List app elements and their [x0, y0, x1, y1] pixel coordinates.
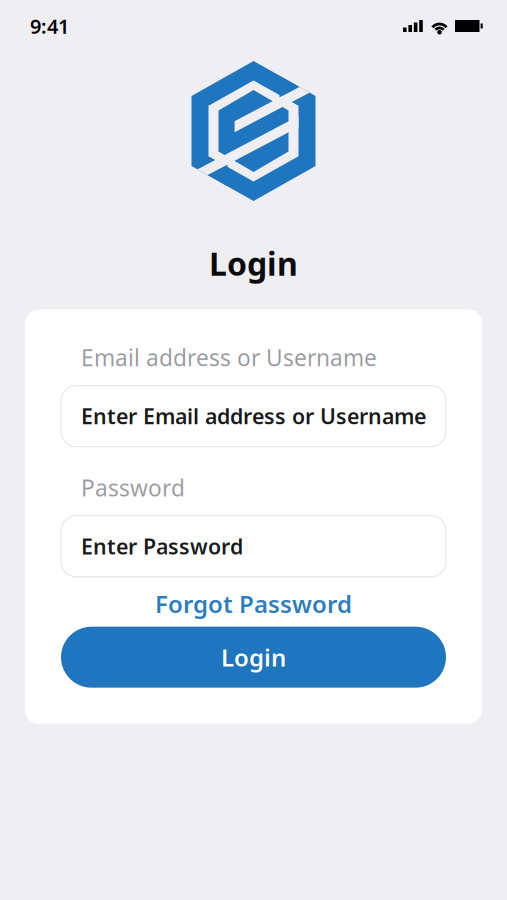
staticText: Email address or Username	[81, 342, 377, 373]
button[interactable]: Login	[61, 627, 446, 688]
staticText: 9:41	[30, 13, 69, 39]
button[interactable]: Enter Password	[61, 516, 446, 577]
staticText: Login	[221, 641, 286, 673]
staticText: Login	[209, 242, 298, 284]
staticText: Password	[81, 473, 185, 503]
button[interactable]: Forgot Password	[61, 585, 446, 623]
staticText: Enter Password	[81, 532, 243, 560]
button[interactable]: Enter Email address or Username	[61, 386, 446, 447]
staticText: Forgot Password	[155, 588, 352, 620]
staticText: Enter Email address or Username	[81, 402, 426, 430]
